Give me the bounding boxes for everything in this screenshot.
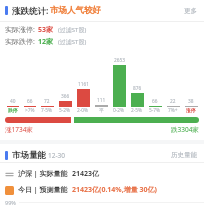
staticText: 沪深 | 实际量能: [18, 169, 68, 179]
staticText: 市场人气较好: [50, 5, 101, 16]
button[interactable]: 更多: [182, 5, 199, 17]
button[interactable]: 实际量能图标: [5, 169, 199, 179]
staticText: (过滤ST股): [58, 38, 87, 46]
button[interactable]: 实际跌停:: [5, 37, 199, 47]
staticText: 12-30: [48, 151, 65, 160]
staticText: 市场量能: [12, 150, 46, 161]
staticText: 0-2%: [113, 107, 125, 114]
staticText: (过滤ST股): [58, 26, 87, 34]
staticText: 今日 | 预测量能: [18, 185, 68, 195]
staticText: 21423亿: [72, 169, 100, 179]
staticText: 22: [170, 98, 176, 105]
staticText: 66: [152, 98, 158, 105]
staticText: 38: [188, 98, 194, 105]
button[interactable]: 实际涨停:: [5, 25, 199, 35]
button[interactable]: 历史量能: [169, 149, 199, 161]
staticText: 366: [61, 93, 70, 100]
staticText: 5-7%: [149, 107, 161, 114]
staticText: 7-5%: [41, 107, 53, 114]
staticText: 平: [99, 107, 104, 113]
staticText: 53家: [38, 25, 54, 35]
staticText: 跌停: [8, 107, 18, 113]
staticText: 2653: [114, 57, 125, 64]
staticText: 更多: [184, 7, 197, 15]
staticText: >7%: [25, 107, 35, 114]
staticText: 实际跌停:: [5, 37, 35, 47]
staticText: 1161: [78, 81, 89, 88]
staticText: 实际涨停:: [5, 25, 35, 35]
staticText: 21423亿(0.14%,增量 30亿): [72, 185, 157, 195]
staticText: 2-5%: [131, 107, 143, 114]
staticText: 99%: [5, 199, 16, 206]
staticText: 72: [44, 98, 50, 105]
staticText: 7%+: [168, 107, 178, 114]
staticText: 12家: [38, 37, 54, 47]
staticText: 66: [27, 98, 33, 105]
staticText: 涨停: [186, 107, 196, 113]
other: 预测量能图标: [5, 186, 14, 195]
other: 实际量能图标: [5, 170, 14, 179]
staticText: 历史量能: [171, 151, 197, 159]
button[interactable]: [5, 117, 199, 123]
staticText: 涨跌统计:: [12, 5, 49, 17]
staticText: 5-2%: [59, 107, 71, 114]
staticText: 2-0%: [77, 107, 89, 114]
button[interactable]: 预测量能图标: [5, 185, 199, 195]
staticText: 111: [97, 97, 106, 104]
staticText: 涨1734家: [5, 125, 33, 134]
staticText: 跌3304家: [171, 125, 199, 134]
staticText: 40: [10, 98, 16, 105]
staticText: 876: [133, 85, 142, 92]
